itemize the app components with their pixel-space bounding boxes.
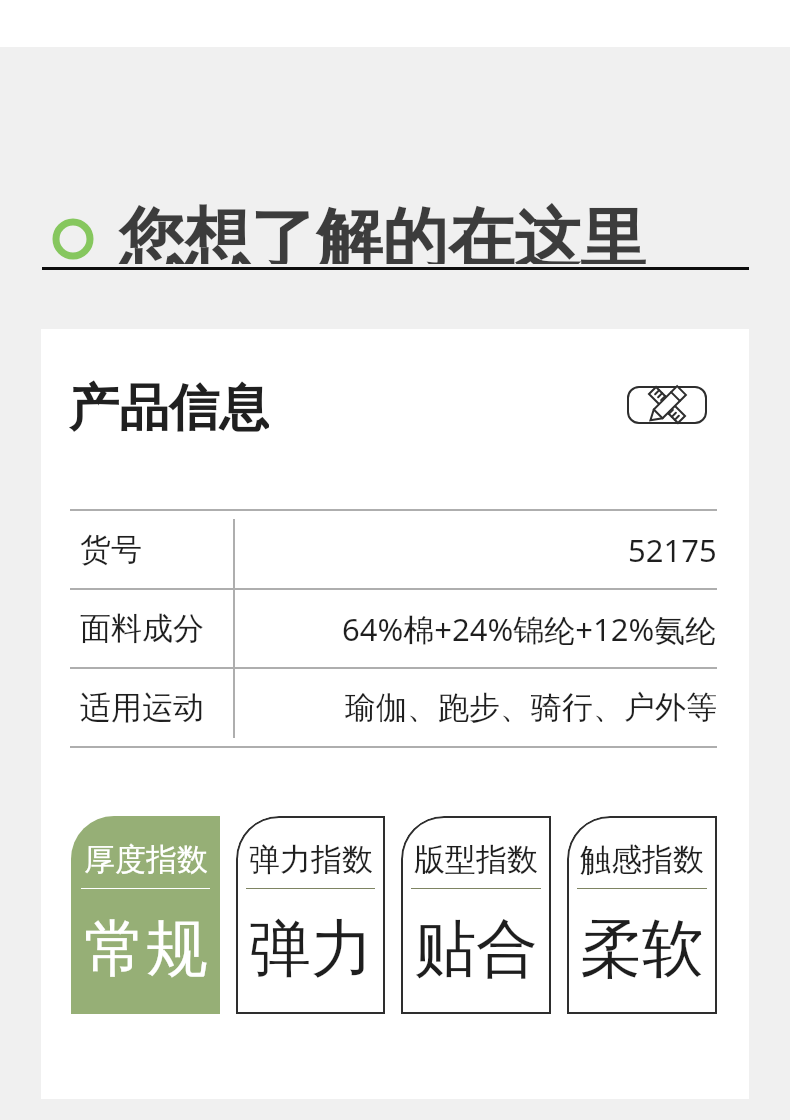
staticText: 52175 <box>628 529 717 571</box>
staticText: 贴合 <box>414 910 538 988</box>
button[interactable]: 货号 <box>70 511 717 588</box>
staticText: 货号 <box>80 530 142 569</box>
staticText: 弹力 <box>249 910 373 988</box>
button[interactable]: 版型指数 <box>401 816 551 1014</box>
staticText: 厚度指数 <box>84 840 208 879</box>
staticText: 柔软 <box>580 910 704 988</box>
staticText: 64%棉+24%锦纶+12%氨纶 <box>342 608 717 650</box>
staticText: 弹力指数 <box>249 840 373 879</box>
other: Section marker <box>52 218 94 260</box>
staticText: 面料成分 <box>80 609 204 648</box>
staticText: 适用运动 <box>80 688 204 727</box>
button[interactable]: 适用运动 <box>70 669 717 746</box>
staticText: 触感指数 <box>580 840 704 879</box>
button[interactable]: Section marker <box>0 201 790 267</box>
staticText: 版型指数 <box>414 840 538 879</box>
staticText: 产品信息 <box>69 377 269 433</box>
button[interactable]: 面料成分 <box>70 590 717 667</box>
button[interactable]: Size and fabric details <box>627 386 707 424</box>
button[interactable]: 触感指数 <box>567 816 717 1014</box>
staticText: 瑜伽、跑步、骑行、户外等 <box>345 688 717 727</box>
button[interactable]: 厚度指数 <box>71 816 220 1014</box>
button[interactable]: 弹力指数 <box>236 816 385 1014</box>
staticText: 常规 <box>84 910 208 988</box>
staticText: 您想了解的在这里 <box>118 198 646 264</box>
